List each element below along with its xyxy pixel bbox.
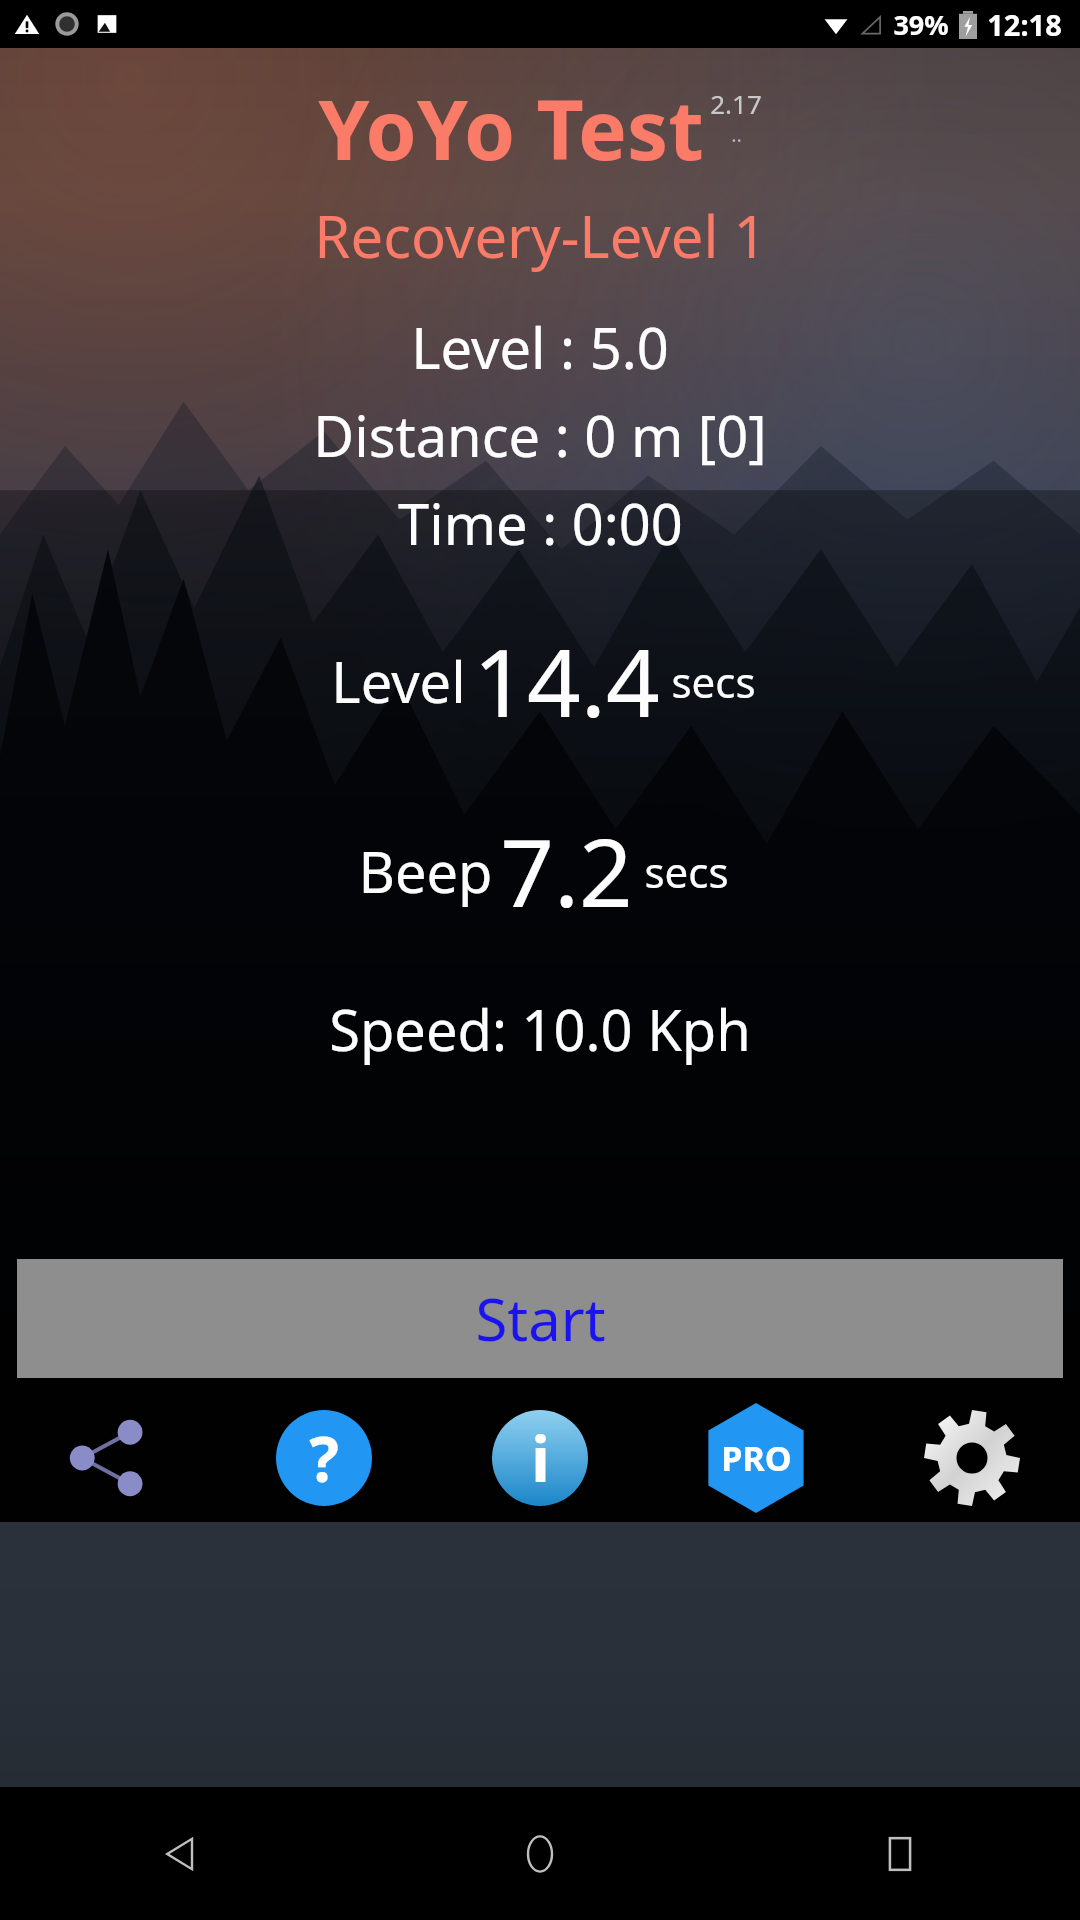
staticText: 12:18 <box>987 5 1062 44</box>
staticText: i <box>531 1416 550 1500</box>
staticText: YoYo Test <box>318 72 704 184</box>
staticText: 7.2 <box>500 807 633 935</box>
staticText: Level <box>324 643 473 719</box>
staticText: Time : 0:00 <box>398 485 683 561</box>
staticText: Level : 5.0 <box>411 309 669 385</box>
staticText: ? <box>309 1416 339 1500</box>
button[interactable]: Settings <box>864 1398 1080 1518</box>
button[interactable]: Help <box>216 1398 432 1518</box>
staticText: 39% <box>893 6 949 43</box>
staticText: Beep <box>351 833 500 909</box>
button[interactable]: Information <box>432 1398 648 1518</box>
staticText: secs <box>633 843 729 900</box>
button[interactable]: Share <box>0 1398 216 1518</box>
staticText: PRO <box>721 1435 792 1481</box>
staticText: Speed: 10.0 Kph <box>329 991 751 1067</box>
button[interactable]: Pro version <box>648 1398 864 1518</box>
staticText: Recovery-Level 1 <box>314 196 767 275</box>
button[interactable]: Recent apps <box>720 1787 1080 1920</box>
staticText: Start <box>475 1279 606 1358</box>
staticText: .. <box>731 121 742 148</box>
staticText: Distance : 0 m [0] <box>313 397 767 473</box>
button[interactable]: Home <box>360 1787 720 1920</box>
button[interactable]: Back <box>0 1787 360 1920</box>
staticText: 2.17 <box>710 86 762 121</box>
staticText: secs <box>660 653 756 710</box>
button[interactable]: Start <box>17 1259 1063 1378</box>
staticText: 14.4 <box>473 617 660 745</box>
